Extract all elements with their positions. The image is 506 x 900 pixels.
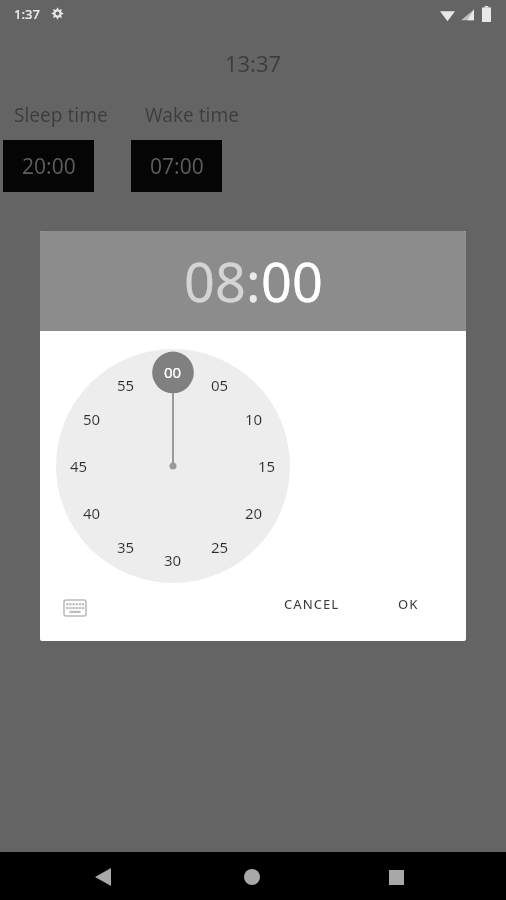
button[interactable]: 30 — [160, 547, 186, 573]
button[interactable]: 00 — [261, 244, 323, 318]
staticText: 25 — [211, 537, 229, 557]
staticText: Sleep time — [14, 102, 108, 128]
button[interactable]: 00 — [160, 359, 186, 385]
staticText: 40 — [83, 503, 101, 523]
staticText: OK — [398, 595, 419, 613]
staticText: 50 — [83, 409, 101, 429]
staticText: 07:00 — [150, 152, 204, 181]
staticText: 20 — [245, 503, 263, 523]
staticText: 20:00 — [22, 152, 76, 181]
staticText: 13:37 — [0, 48, 506, 78]
staticText: 00 — [164, 362, 182, 382]
button[interactable]: 07:00 — [131, 140, 222, 192]
button[interactable]: 20 — [241, 500, 267, 526]
staticText: 1:37 — [14, 5, 40, 23]
button[interactable]: Back — [92, 866, 114, 888]
button[interactable]: 40 — [79, 500, 105, 526]
button[interactable]: CANCEL — [284, 595, 340, 613]
button[interactable]: 20:00 — [3, 140, 94, 192]
button[interactable]: 05 — [207, 372, 233, 398]
button[interactable]: 50 — [79, 406, 105, 432]
staticText: Wake time — [145, 102, 239, 128]
button[interactable]: 15 — [254, 453, 280, 479]
button[interactable]: 25 — [207, 534, 233, 560]
staticText: CANCEL — [284, 595, 340, 613]
staticText: 30 — [164, 550, 182, 570]
staticText: 55 — [117, 375, 135, 395]
button[interactable]: 08 — [184, 244, 246, 318]
staticText: 35 — [117, 537, 135, 557]
button[interactable]: Switch to text input — [60, 593, 90, 623]
staticText: 05 — [211, 375, 229, 395]
staticText: 45 — [70, 456, 88, 476]
staticText: 15 — [258, 456, 276, 476]
button[interactable]: Recent apps — [385, 866, 407, 888]
button[interactable]: 55 — [113, 372, 139, 398]
button[interactable]: OK — [398, 595, 419, 613]
button[interactable]: Home — [241, 866, 263, 888]
button[interactable]: 10 — [241, 406, 267, 432]
button[interactable]: 45 — [66, 453, 92, 479]
staticText: : — [246, 244, 261, 318]
staticText: 10 — [245, 409, 263, 429]
button[interactable]: 35 — [113, 534, 139, 560]
